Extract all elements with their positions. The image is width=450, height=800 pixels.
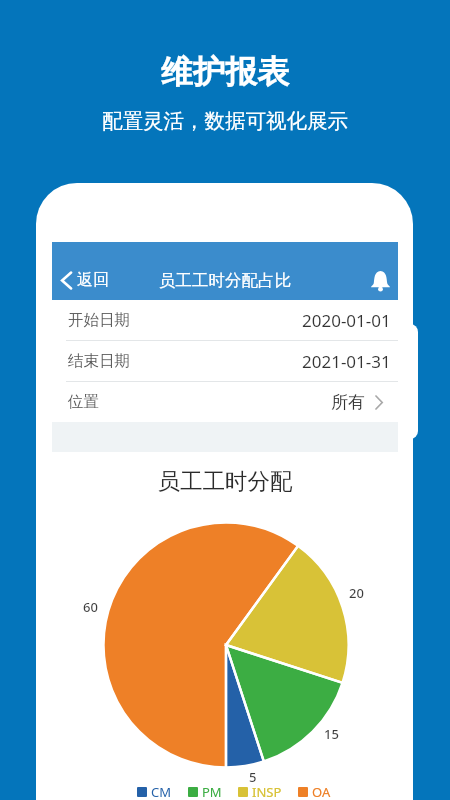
button[interactable]: 结束日期 xyxy=(52,341,398,381)
staticText: OA xyxy=(312,783,331,800)
staticText: 结束日期 xyxy=(68,351,130,371)
staticText: PM xyxy=(202,783,222,800)
staticText: 位置 xyxy=(68,392,99,412)
button[interactable]: 位置 xyxy=(52,382,398,422)
button[interactable]: 开始日期 xyxy=(52,300,398,340)
staticText: 员工工时分配 xyxy=(52,467,398,495)
staticText: 5 xyxy=(249,768,257,786)
staticText: INSP xyxy=(252,783,282,800)
staticText: 15 xyxy=(324,725,339,743)
staticText: 60 xyxy=(83,598,98,616)
staticText: 所有 xyxy=(331,392,365,413)
staticText: 20 xyxy=(349,584,364,602)
button[interactable]: 返回 xyxy=(52,264,117,296)
staticText: 维护报表 xyxy=(161,52,289,92)
staticText: 配置灵活，数据可视化展示 xyxy=(102,108,348,134)
staticText: 2020-01-01 xyxy=(302,309,391,332)
staticText: CM xyxy=(151,783,172,800)
staticText: 员工工时分配占比 xyxy=(159,270,291,291)
staticText: 返回 xyxy=(77,270,109,290)
button[interactable]: Notifications xyxy=(362,262,399,300)
staticText: 2021-01-31 xyxy=(302,350,391,373)
staticText: 开始日期 xyxy=(68,310,130,330)
